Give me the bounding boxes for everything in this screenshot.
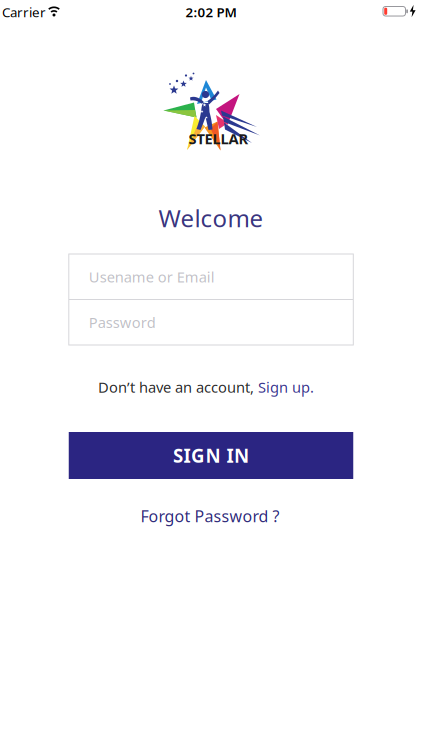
staticText: 2:02 PM (185, 3, 236, 21)
staticText: STELLAR (188, 129, 248, 148)
button[interactable]: Forgot Password ? (140, 505, 279, 527)
staticText: SIGN IN (173, 443, 249, 468)
button[interactable]: Password (69, 299, 353, 345)
staticText: Usename or Email (89, 267, 215, 286)
staticText: Don’t have an account, (98, 377, 258, 397)
button[interactable]: SIGN IN (69, 432, 353, 479)
button[interactable]: Username or Email (69, 254, 353, 299)
staticText: Welcome (158, 202, 263, 234)
staticText: Password (89, 312, 156, 332)
staticText: Carrier (2, 3, 46, 21)
button[interactable]: Sign up. (258, 377, 314, 397)
staticText: Forgot Password ? (140, 505, 279, 527)
staticText: Sign up. (258, 377, 314, 397)
